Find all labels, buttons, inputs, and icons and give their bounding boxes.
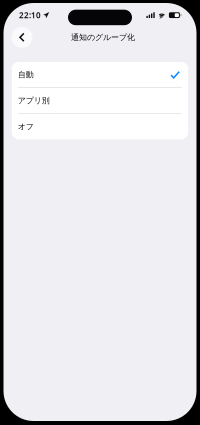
staticText: 通知のグループ化 <box>71 32 135 42</box>
button[interactable]: Back <box>10 26 33 49</box>
staticText: オフ <box>18 122 34 132</box>
staticText: 自動 <box>18 70 34 80</box>
staticText: 22:10 <box>19 10 41 20</box>
staticText: アプリ別 <box>18 96 50 106</box>
button[interactable]: アプリ別 <box>12 88 188 114</box>
button[interactable]: オフ <box>12 114 188 139</box>
button[interactable]: 自動 <box>12 62 188 88</box>
